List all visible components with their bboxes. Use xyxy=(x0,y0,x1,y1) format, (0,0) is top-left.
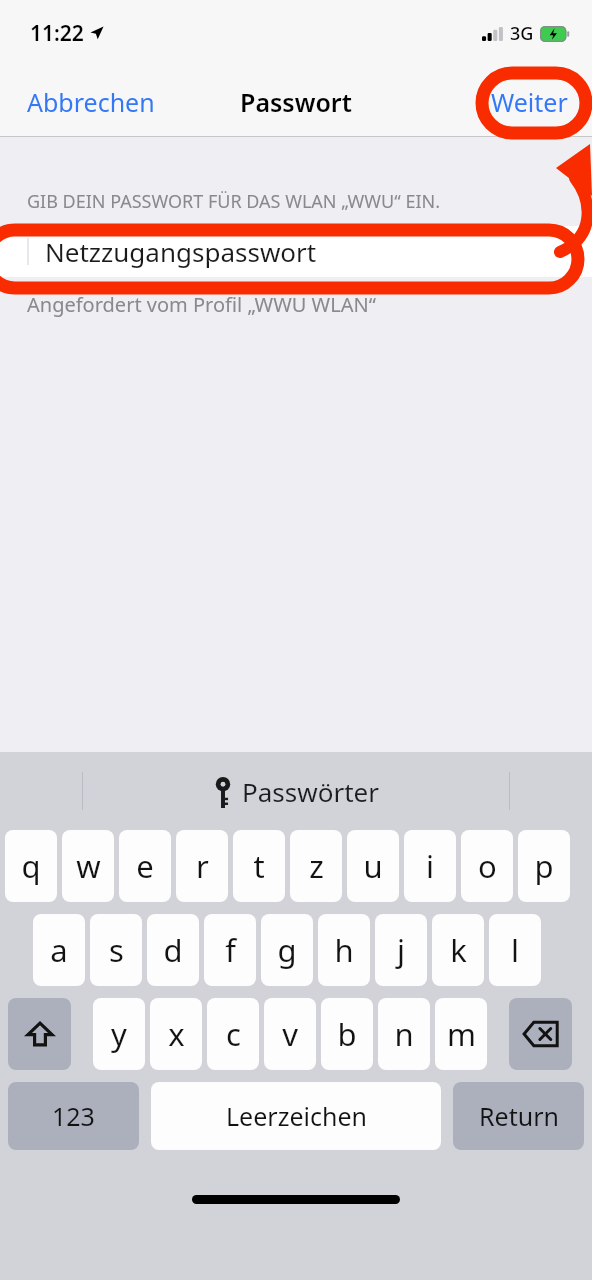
staticText: x xyxy=(168,1013,185,1055)
staticText: Weiter xyxy=(491,85,568,119)
staticText: Passwörter xyxy=(242,774,379,809)
staticText: m xyxy=(447,1013,476,1055)
staticText: b xyxy=(337,1013,357,1055)
button[interactable]: Passwörter xyxy=(146,765,446,817)
button[interactable]: Leerzeichen xyxy=(151,1082,441,1150)
button[interactable]: b xyxy=(321,998,373,1070)
staticText: l xyxy=(511,929,519,971)
button[interactable]: p xyxy=(518,830,570,902)
button[interactable]: f xyxy=(204,914,256,986)
staticText: a xyxy=(50,929,68,971)
staticText: e xyxy=(136,845,154,887)
staticText: v xyxy=(282,1013,298,1055)
staticText: i xyxy=(426,845,434,887)
button[interactable]: o xyxy=(461,830,513,902)
button[interactable]: d xyxy=(147,914,199,986)
button[interactable]: r xyxy=(176,830,228,902)
button[interactable]: Return xyxy=(453,1082,584,1150)
staticText: Angefordert vom Profil „WWU WLAN“ xyxy=(27,291,376,318)
staticText: Abbrechen xyxy=(27,85,155,119)
staticText: r xyxy=(196,845,209,887)
staticText: f xyxy=(225,929,236,971)
staticText: g xyxy=(277,929,297,971)
button[interactable]: Abbrechen xyxy=(0,75,169,129)
staticText: Netzzugangspasswort xyxy=(45,234,317,269)
button[interactable]: a xyxy=(33,914,85,986)
staticText: w xyxy=(76,845,101,887)
button[interactable]: m xyxy=(435,998,487,1070)
button[interactable]: Backspace xyxy=(509,998,572,1070)
button[interactable]: j xyxy=(375,914,427,986)
staticText: Passwort xyxy=(240,85,352,119)
staticText: n xyxy=(394,1013,414,1055)
button[interactable]: i xyxy=(404,830,456,902)
staticText: GIB DEIN PASSWORT FÜR DAS WLAN „WWU“ EIN… xyxy=(27,189,441,214)
button[interactable]: z xyxy=(290,830,342,902)
button[interactable]: u xyxy=(347,830,399,902)
staticText: h xyxy=(334,929,354,971)
staticText: u xyxy=(363,845,383,887)
staticText: 123 xyxy=(52,1099,95,1133)
button[interactable]: n xyxy=(378,998,430,1070)
button[interactable]: v xyxy=(264,998,316,1070)
staticText: z xyxy=(309,845,324,887)
staticText: j xyxy=(397,929,405,971)
button[interactable]: Shift xyxy=(8,998,71,1070)
button[interactable]: k xyxy=(432,914,484,986)
button[interactable]: s xyxy=(90,914,142,986)
button[interactable]: g xyxy=(261,914,313,986)
staticText: d xyxy=(163,929,183,971)
staticText: s xyxy=(109,929,124,971)
button[interactable]: w xyxy=(62,830,114,902)
button[interactable]: Weiter xyxy=(477,75,592,129)
staticText: k xyxy=(450,929,467,971)
button[interactable]: l xyxy=(489,914,541,986)
staticText: c xyxy=(226,1013,241,1055)
staticText: 11:22 xyxy=(30,19,84,48)
staticText: q xyxy=(21,845,41,887)
button[interactable]: t xyxy=(233,830,285,902)
button[interactable]: h xyxy=(318,914,370,986)
staticText: Leerzeichen xyxy=(226,1099,367,1133)
button[interactable]: x xyxy=(150,998,202,1070)
staticText: Return xyxy=(479,1099,559,1133)
staticText: t xyxy=(253,845,265,887)
button[interactable]: c xyxy=(207,998,259,1070)
button[interactable]: q xyxy=(5,830,57,902)
staticText: 3G xyxy=(510,21,534,46)
staticText: o xyxy=(478,845,497,887)
button[interactable]: Netzzugangspasswort xyxy=(0,226,592,277)
button[interactable]: e xyxy=(119,830,171,902)
button[interactable]: y xyxy=(93,998,145,1070)
staticText: p xyxy=(534,845,554,887)
button[interactable]: 123 xyxy=(8,1082,139,1150)
staticText: y xyxy=(111,1013,127,1055)
